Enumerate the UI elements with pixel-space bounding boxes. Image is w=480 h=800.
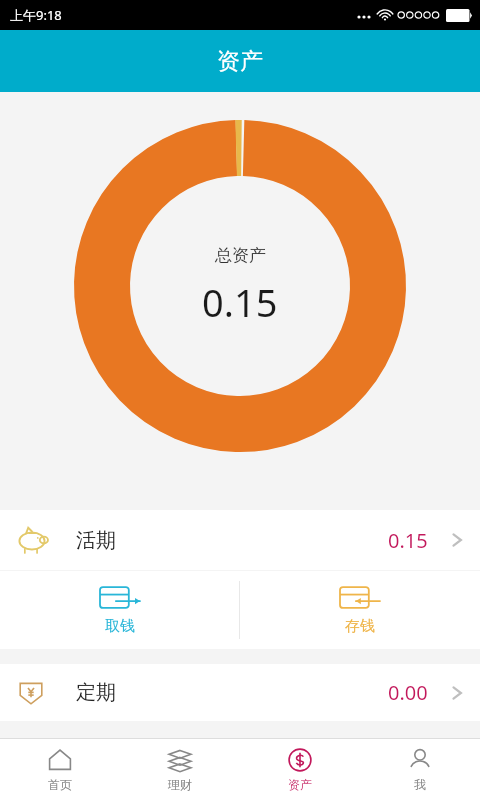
staticText: 定期 (76, 680, 116, 705)
staticText: 存钱 (345, 617, 375, 636)
staticText: 资产 (217, 47, 263, 76)
staticText: 资产 (288, 777, 312, 792)
staticText: 活期 (76, 528, 116, 553)
button[interactable]: 取钱 (0, 571, 239, 649)
button[interactable]: 定期 (0, 664, 480, 721)
button[interactable]: 活期 (0, 510, 480, 570)
staticText: 理财 (168, 777, 192, 792)
staticText: 总资产 (215, 245, 266, 266)
staticText: 0.15 (388, 527, 428, 554)
button[interactable]: 资产 (240, 739, 360, 800)
button[interactable]: 存钱 (240, 571, 480, 649)
button[interactable]: 理财 (120, 739, 240, 800)
staticText: 上午9:18 (10, 6, 62, 24)
staticText: 0.00 (388, 679, 428, 706)
staticText: 0.15 (202, 276, 278, 328)
staticText: 取钱 (105, 617, 135, 636)
button[interactable]: 我 (360, 739, 480, 800)
staticText: 首页 (48, 777, 72, 792)
button[interactable]: 首页 (0, 739, 120, 800)
staticText: 我 (414, 777, 426, 792)
